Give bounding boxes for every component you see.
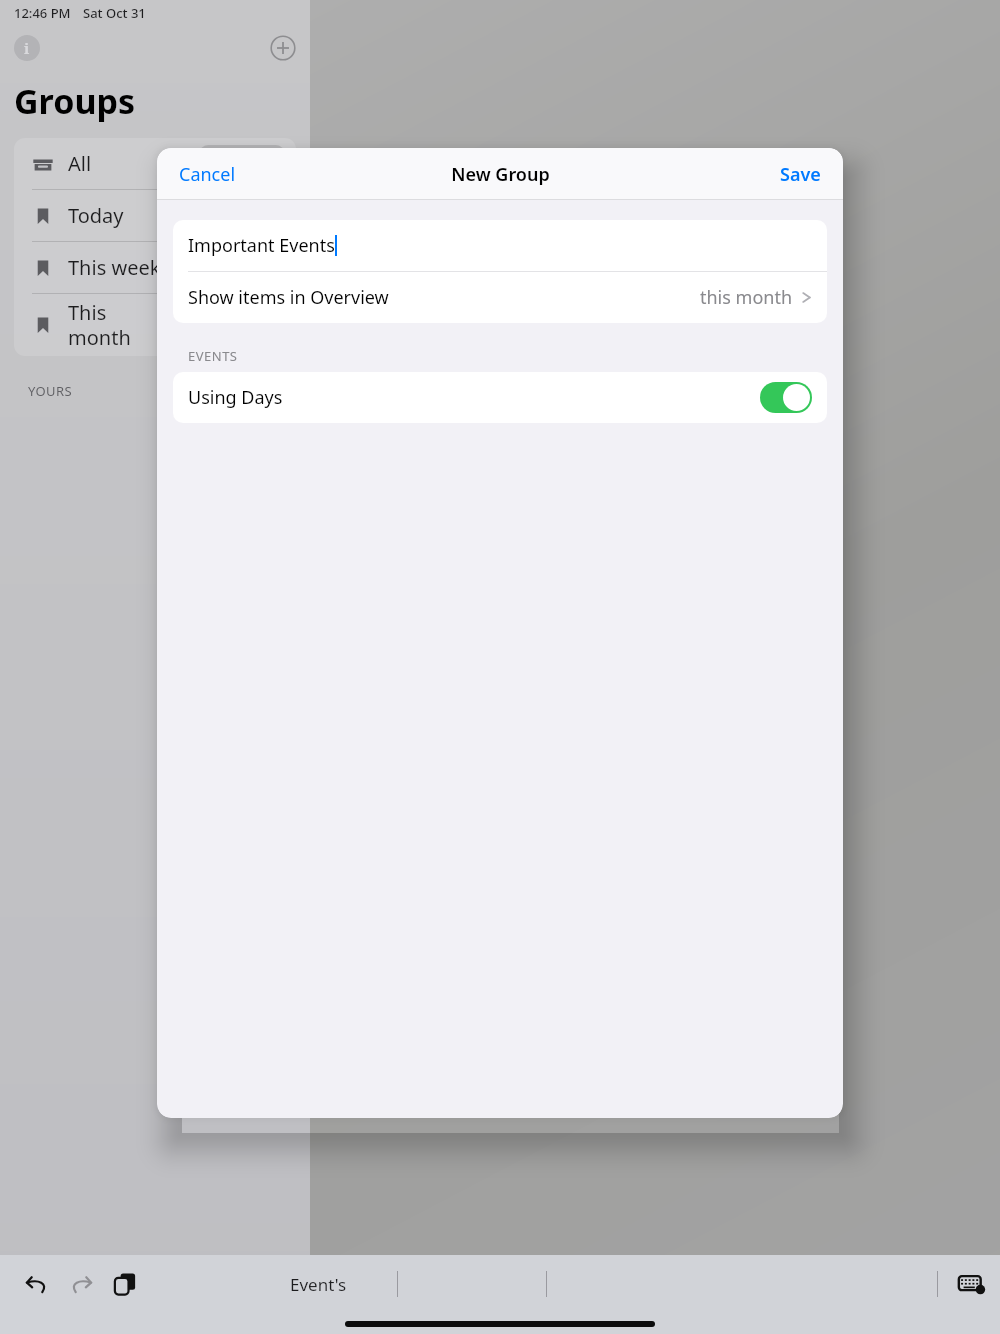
staticText: Important Events <box>188 233 335 258</box>
other: Using Days toggle, on <box>760 382 812 413</box>
staticText: 1 Event <box>214 153 270 175</box>
button[interactable]: Event's <box>284 1267 353 1302</box>
button[interactable]: This month <box>14 294 296 356</box>
button[interactable]: Important Events <box>188 220 812 271</box>
staticText: i <box>24 38 30 58</box>
button[interactable]: Add group <box>270 35 296 61</box>
button[interactable]: Using Days <box>188 372 812 423</box>
button[interactable]: Show items in Overview <box>188 272 812 323</box>
staticText: 12:46 PM <box>14 4 71 22</box>
button[interactable]: This week <box>14 242 296 294</box>
button[interactable]: Save <box>778 160 823 189</box>
staticText: Cancel <box>179 162 236 187</box>
staticText: Save <box>780 162 821 187</box>
staticText: YOURS <box>28 382 72 400</box>
staticText: Groups <box>14 78 136 124</box>
button[interactable]: Cancel <box>177 160 238 189</box>
staticText: This month <box>68 299 131 351</box>
staticText: EVENTS <box>188 347 238 365</box>
button[interactable]: Keyboard options <box>952 1264 992 1304</box>
button[interactable]: Today <box>14 190 296 242</box>
staticText: Using Days <box>188 385 283 410</box>
staticText: This week <box>68 254 161 281</box>
staticText: this month <box>700 285 793 310</box>
button[interactable]: Undo <box>20 1267 54 1301</box>
button[interactable]: All <box>14 138 296 190</box>
staticText: Show items in Overview <box>188 285 389 310</box>
staticText: New Group <box>451 162 550 187</box>
staticText: All <box>68 150 92 177</box>
staticText: Sat Oct 31 <box>83 4 146 22</box>
staticText: Event's <box>290 1273 347 1296</box>
staticText: Today <box>68 202 124 229</box>
button[interactable]: Paste <box>108 1267 142 1301</box>
button[interactable]: Info <box>14 35 40 61</box>
button[interactable]: Redo <box>64 1267 98 1301</box>
